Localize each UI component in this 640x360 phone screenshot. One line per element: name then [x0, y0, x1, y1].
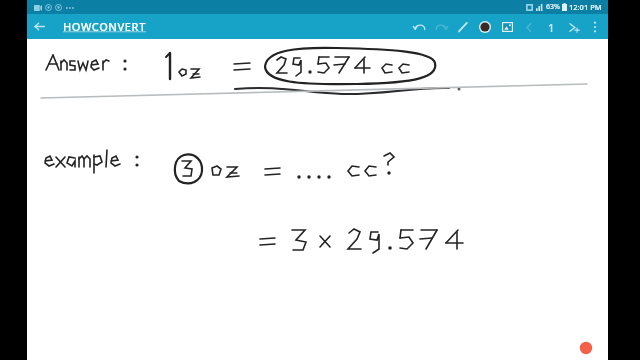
button[interactable]: Previous page	[518, 16, 540, 38]
button[interactable]: Redo	[430, 16, 452, 38]
button[interactable]: Add page	[562, 16, 584, 38]
staticText: 12:01 PM	[569, 2, 602, 12]
button[interactable]: Insert image	[496, 16, 518, 38]
button[interactable]: Undo	[408, 16, 430, 38]
button[interactable]: More options	[584, 16, 606, 38]
button[interactable]: HOWCONVERT	[63, 19, 146, 34]
button[interactable]: 1	[540, 16, 562, 38]
staticText: 63%	[546, 2, 560, 12]
staticText: HOWCONVERT	[63, 19, 146, 34]
button[interactable]: Back	[27, 14, 52, 39]
staticText: 1	[548, 20, 555, 35]
button[interactable]: Pen	[452, 16, 474, 38]
button[interactable]: Color	[474, 16, 496, 38]
